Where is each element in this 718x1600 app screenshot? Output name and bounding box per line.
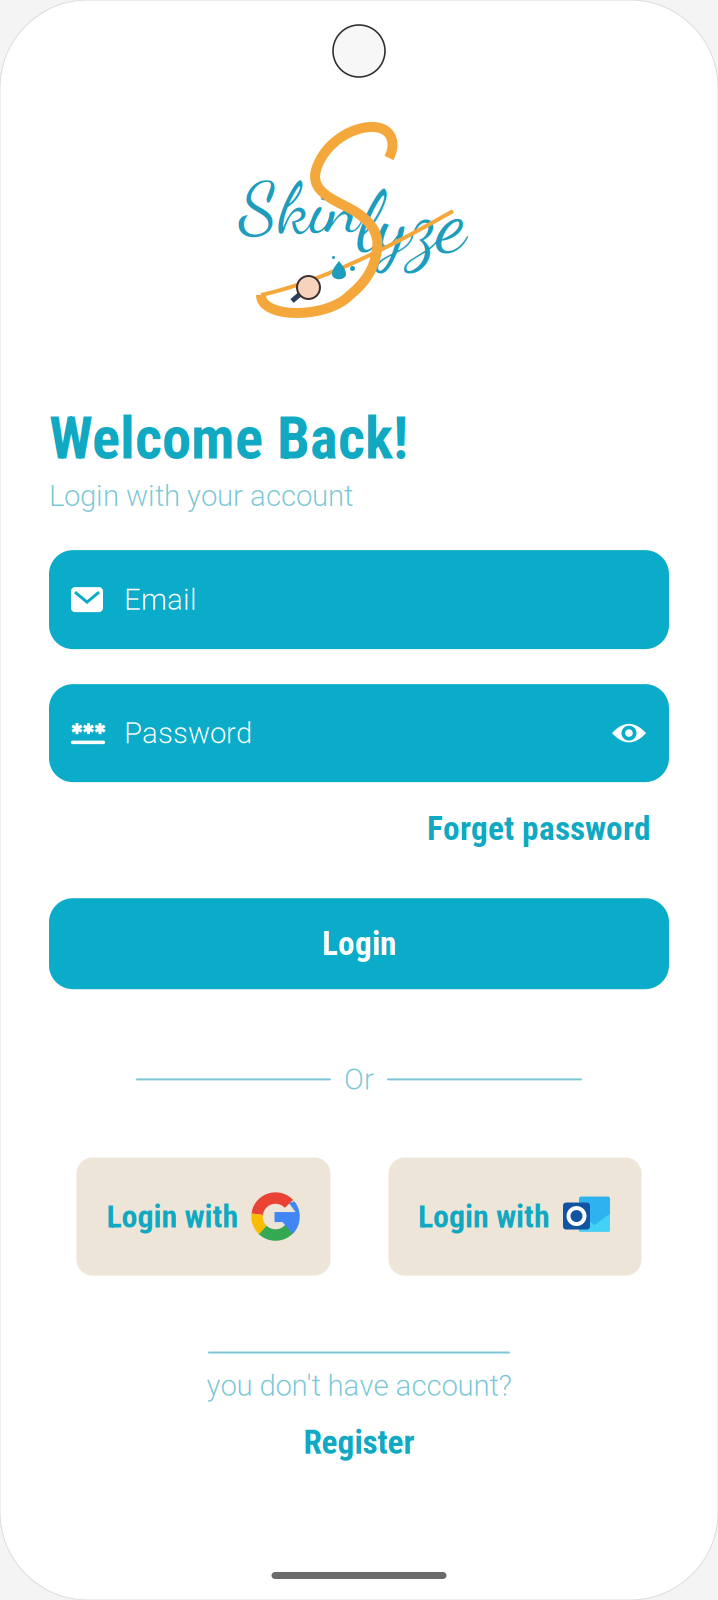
staticText: lyze	[357, 171, 465, 273]
staticText: Skin	[239, 165, 361, 251]
staticText: Welcome Back!	[49, 404, 408, 473]
staticText: Password	[124, 716, 252, 750]
staticText: Login	[322, 924, 396, 963]
staticText: Login with	[418, 1198, 550, 1235]
button[interactable]: Login with	[388, 1158, 641, 1276]
staticText: Login with	[106, 1198, 238, 1235]
staticText: you don't have account?	[206, 1369, 511, 1403]
button[interactable]: Email	[49, 550, 669, 649]
button[interactable]: Register	[297, 1419, 420, 1466]
button[interactable]: Login with	[76, 1158, 330, 1276]
staticText: Login with your account	[49, 479, 353, 513]
button[interactable]: Forget password	[425, 804, 653, 853]
staticText: Or	[344, 1062, 374, 1097]
button[interactable]: Password	[49, 684, 669, 782]
staticText: Register	[303, 1423, 414, 1462]
button[interactable]: Login	[49, 898, 669, 989]
staticText: Email	[124, 582, 197, 617]
staticText: Forget password	[427, 809, 651, 848]
